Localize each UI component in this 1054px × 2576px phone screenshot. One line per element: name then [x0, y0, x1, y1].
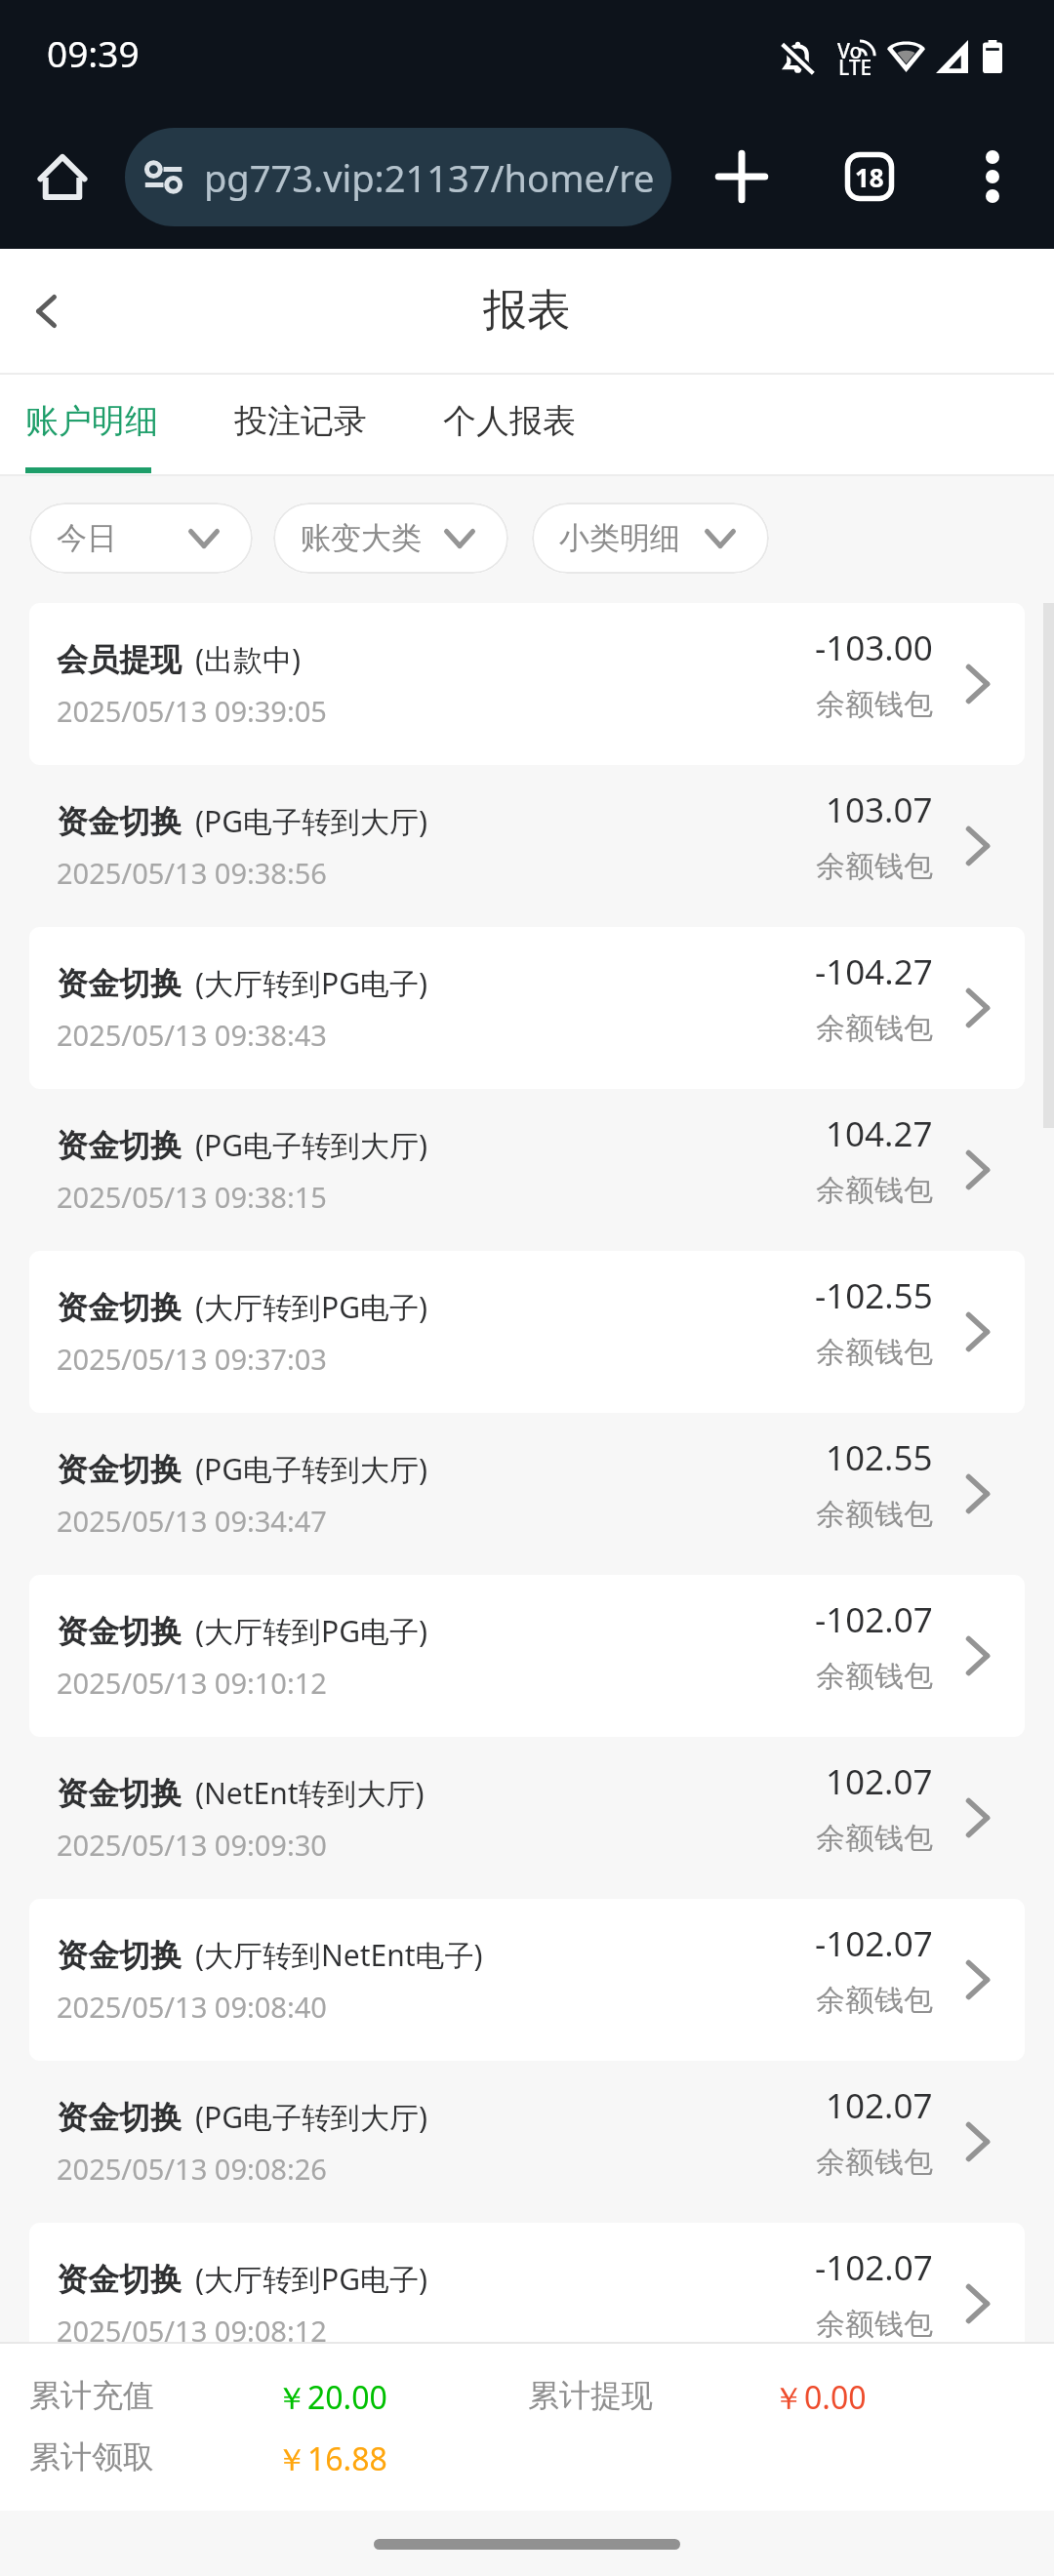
- button[interactable]: 账变大类: [273, 503, 508, 574]
- staticText: 2025/05/13 09:10:12: [57, 1664, 327, 1702]
- button[interactable]: 资金切换: [0, 1737, 1054, 1899]
- staticText: 资金切换: [57, 1288, 182, 1327]
- staticText: 余额钱包: [816, 1982, 933, 2019]
- staticText: 18: [855, 160, 884, 194]
- staticText: (NetEnt转到大厅): [195, 1773, 425, 1813]
- staticText: 103.07: [826, 786, 933, 833]
- staticText: 今日: [57, 519, 117, 557]
- button[interactable]: Back: [0, 249, 92, 373]
- staticText: -102.07: [815, 1920, 933, 1967]
- staticText: 余额钱包: [816, 2306, 933, 2342]
- button[interactable]: 资金切换: [0, 2223, 1054, 2342]
- staticText: (PG电子转到大厅): [195, 1449, 427, 1489]
- staticText: 09:39: [47, 28, 140, 77]
- staticText: 资金切换: [57, 2260, 182, 2299]
- staticText: (大厅转到PG电子): [195, 2259, 427, 2299]
- button[interactable]: 资金切换: [0, 1575, 1054, 1737]
- staticText: 2025/05/13 09:08:12: [57, 2312, 327, 2342]
- staticText: 累计领取: [29, 2437, 276, 2476]
- staticText: 104.27: [826, 1110, 933, 1157]
- staticText: 资金切换: [57, 1450, 182, 1489]
- staticText: -103.00: [815, 624, 933, 671]
- staticText: 资金切换: [57, 1774, 182, 1813]
- button[interactable]: 资金切换: [0, 1089, 1054, 1251]
- staticText: 资金切换: [57, 1936, 182, 1975]
- button[interactable]: 会员提现: [0, 603, 1054, 765]
- staticText: 2025/05/13 09:34:47: [57, 1502, 327, 1540]
- staticText: 2025/05/13 09:39:05: [57, 692, 327, 730]
- staticText: 2025/05/13 09:38:43: [57, 1016, 327, 1054]
- button[interactable]: 资金切换: [0, 765, 1054, 927]
- button[interactable]: More options: [939, 104, 1046, 249]
- staticText: pg773.vip:21137/home/re: [204, 152, 655, 203]
- staticText: (大厅转到NetEnt电子): [195, 1935, 483, 1975]
- button[interactable]: 账户明细: [0, 375, 209, 474]
- button[interactable]: Switch tabs: [811, 104, 928, 249]
- staticText: 102.07: [826, 1758, 933, 1805]
- button[interactable]: 资金切换: [0, 1251, 1054, 1413]
- staticText: (大厅转到PG电子): [195, 963, 427, 1003]
- staticText: 102.07: [826, 2082, 933, 2129]
- staticText: 2025/05/13 09:09:30: [57, 1826, 327, 1864]
- staticText: -102.07: [815, 1596, 933, 1643]
- button[interactable]: 小类明细: [532, 503, 769, 574]
- staticText: (PG电子转到大厅): [195, 801, 427, 841]
- staticText: 累计提现: [528, 2376, 773, 2415]
- staticText: Vo: [837, 37, 863, 65]
- staticText: 资金切换: [57, 1126, 182, 1165]
- staticText: -104.27: [815, 948, 933, 995]
- staticText: 2025/05/13 09:08:40: [57, 1988, 327, 2026]
- staticText: 余额钱包: [816, 1820, 933, 1857]
- staticText: 报表: [483, 283, 571, 339]
- staticText: -102.55: [815, 1272, 933, 1319]
- button[interactable]: Home: [10, 104, 115, 249]
- staticText: 余额钱包: [816, 848, 933, 885]
- staticText: ￥16.88: [276, 2437, 523, 2480]
- staticText: LTE: [838, 54, 872, 82]
- staticText: 余额钱包: [816, 1010, 933, 1047]
- staticText: 2025/05/13 09:37:03: [57, 1340, 327, 1378]
- staticText: 资金切换: [57, 2098, 182, 2137]
- button[interactable]: 资金切换: [0, 1413, 1054, 1575]
- button[interactable]: pg773.vip:21137/home/re: [125, 128, 671, 226]
- staticText: 账户明细: [25, 400, 158, 442]
- staticText: 2025/05/13 09:38:15: [57, 1178, 327, 1216]
- staticText: 资金切换: [57, 1612, 182, 1651]
- staticText: 余额钱包: [816, 1496, 933, 1533]
- staticText: 小类明细: [559, 519, 680, 557]
- staticText: 余额钱包: [816, 1172, 933, 1209]
- staticText: (大厅转到PG电子): [195, 1287, 427, 1327]
- button[interactable]: 今日: [29, 503, 253, 574]
- staticText: (大厅转到PG电子): [195, 1611, 427, 1651]
- staticText: 账变大类: [301, 519, 422, 557]
- staticText: 余额钱包: [816, 2144, 933, 2181]
- staticText: 资金切换: [57, 964, 182, 1003]
- staticText: (出款中): [195, 639, 301, 679]
- button[interactable]: 投注记录: [209, 375, 418, 474]
- staticText: 投注记录: [234, 400, 367, 442]
- staticText: 102.55: [826, 1434, 933, 1481]
- staticText: 2025/05/13 09:08:26: [57, 2150, 327, 2188]
- button[interactable]: 资金切换: [0, 1899, 1054, 2061]
- staticText: (PG电子转到大厅): [195, 1125, 427, 1165]
- button[interactable]: 资金切换: [0, 2061, 1054, 2223]
- button[interactable]: New tab: [683, 104, 800, 249]
- staticText: -102.07: [815, 2244, 933, 2291]
- button[interactable]: 个人报表: [418, 375, 627, 474]
- staticText: 资金切换: [57, 802, 182, 841]
- staticText: 余额钱包: [816, 686, 933, 723]
- staticText: 个人报表: [443, 400, 576, 442]
- staticText: 2025/05/13 09:38:56: [57, 854, 327, 892]
- staticText: 累计充值: [29, 2376, 276, 2415]
- staticText: (PG电子转到大厅): [195, 2097, 427, 2137]
- button[interactable]: 资金切换: [0, 927, 1054, 1089]
- staticText: 会员提现: [57, 640, 182, 679]
- staticText: ￥20.00: [276, 2376, 528, 2419]
- staticText: ￥0.00: [773, 2376, 867, 2419]
- staticText: 余额钱包: [816, 1334, 933, 1371]
- staticText: 余额钱包: [816, 1658, 933, 1695]
